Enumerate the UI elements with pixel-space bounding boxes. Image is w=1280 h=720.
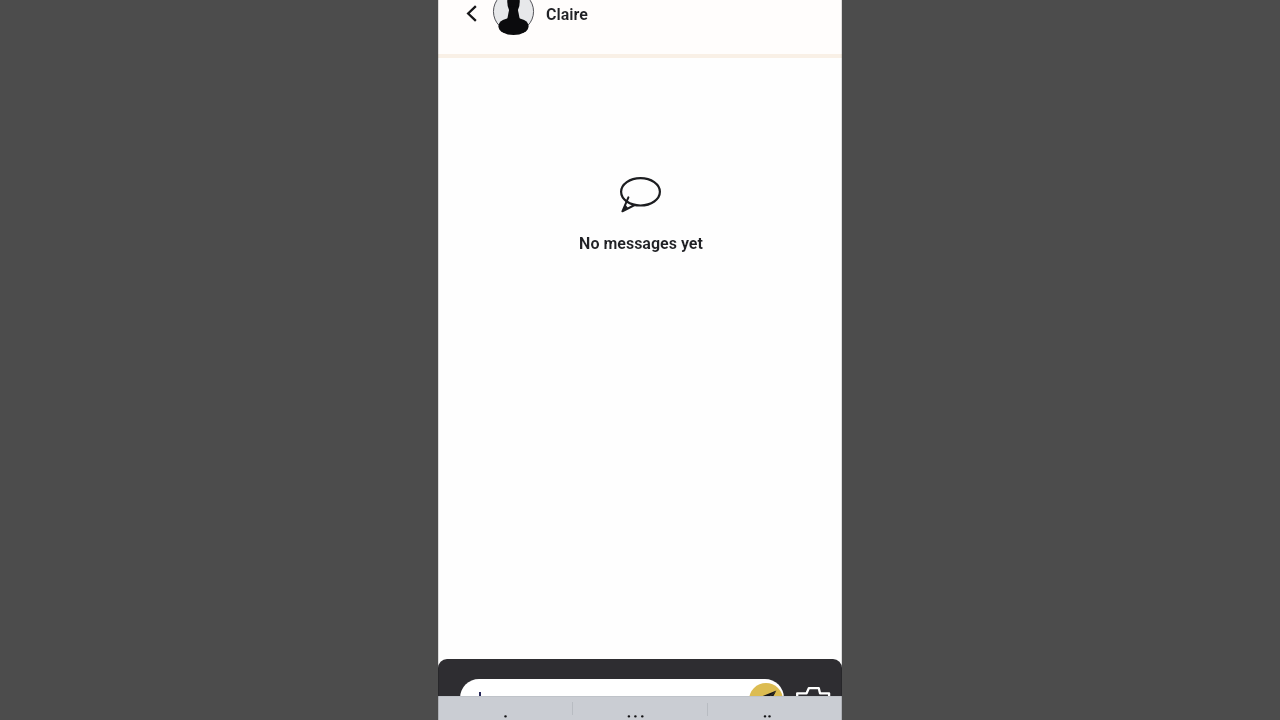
button[interactable] xyxy=(460,679,784,720)
button[interactable] xyxy=(572,696,707,720)
staticText: No messages yet xyxy=(579,234,703,253)
button[interactable] xyxy=(707,696,842,720)
button[interactable]: Back xyxy=(458,0,486,27)
button[interactable]: Profile photo xyxy=(493,0,534,47)
button[interactable]: Send xyxy=(749,683,783,717)
button[interactable]: Camera xyxy=(796,686,831,710)
button[interactable] xyxy=(438,696,572,720)
staticText: Claire xyxy=(546,5,588,24)
